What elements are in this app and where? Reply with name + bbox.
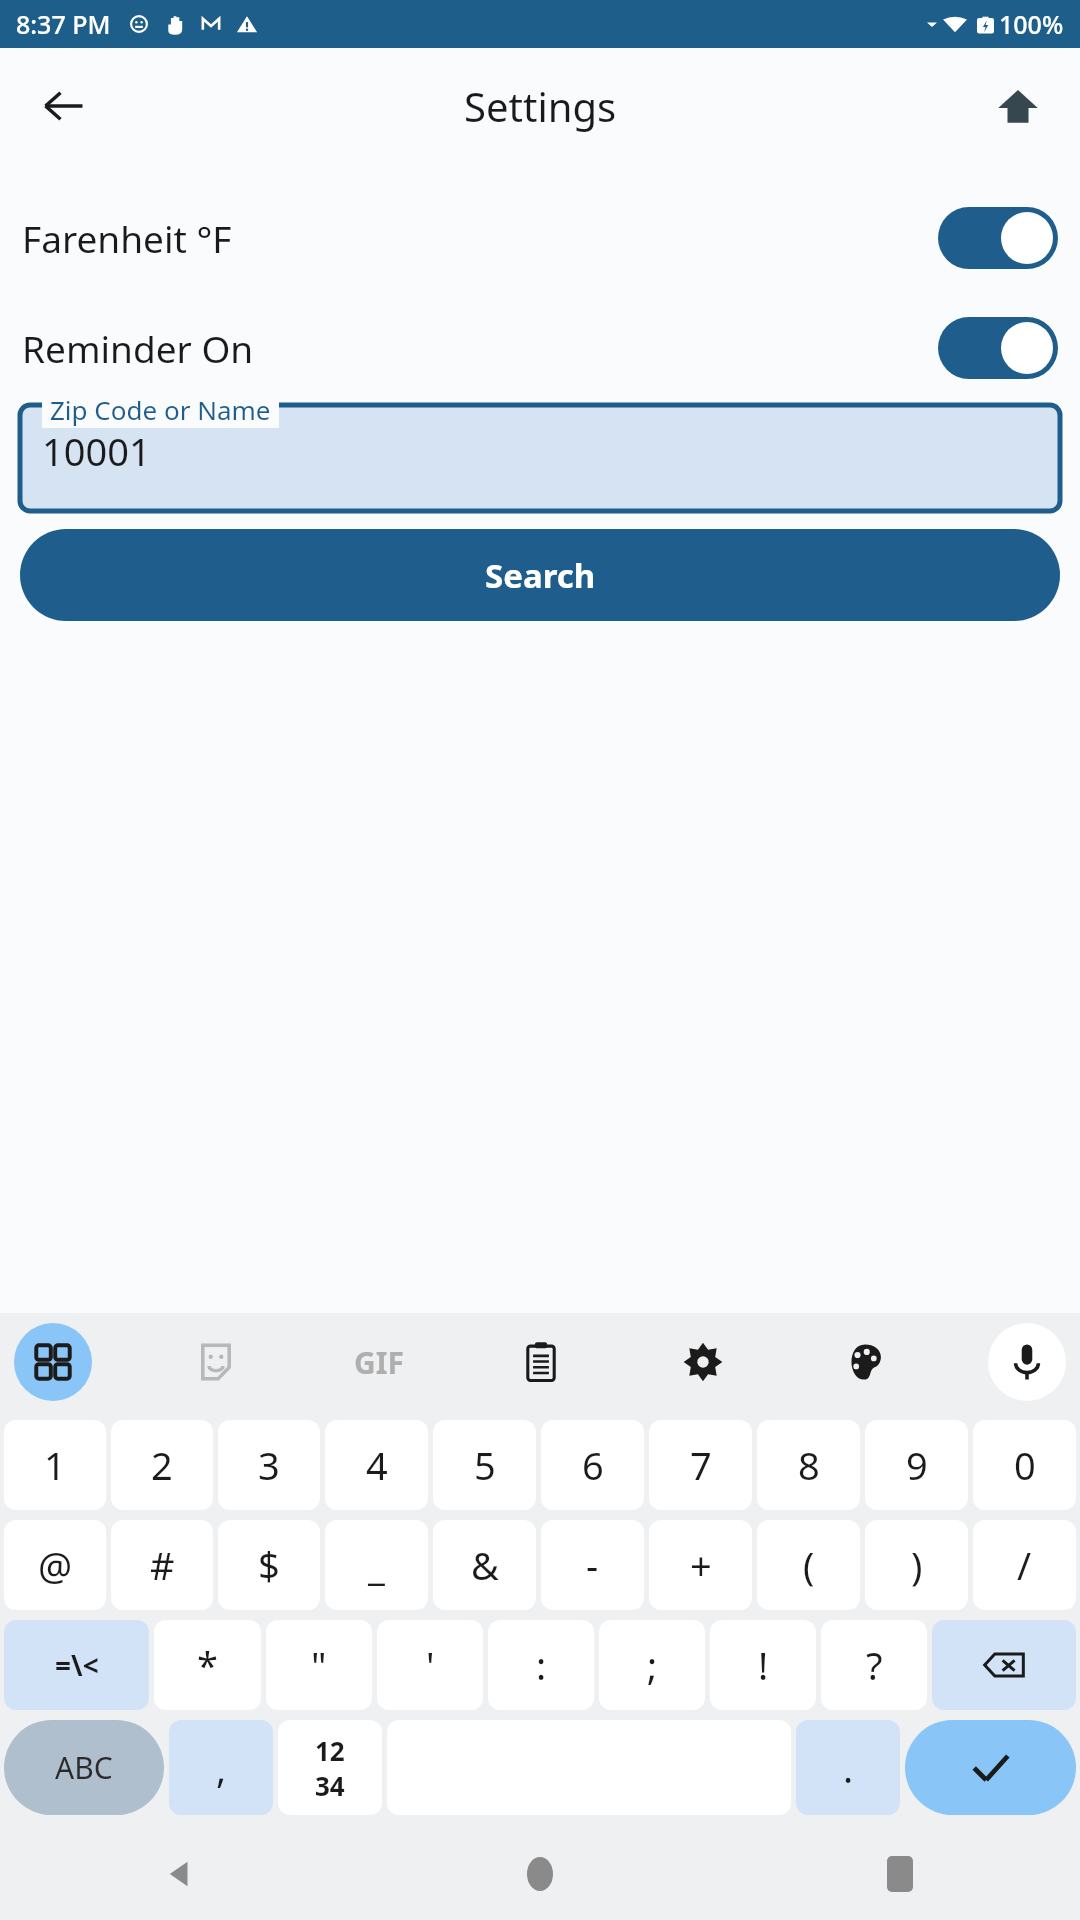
staticText: 34 [315, 1768, 345, 1803]
staticText: - [586, 1539, 599, 1591]
button[interactable]: Apps [14, 1323, 92, 1401]
staticText: & [471, 1539, 499, 1591]
button[interactable]: ABC [4, 1720, 164, 1815]
button[interactable]: Recents [720, 1828, 1080, 1920]
staticText: ABC [55, 1747, 113, 1788]
button[interactable]: Backspace [932, 1620, 1076, 1710]
button[interactable]: & [433, 1520, 536, 1610]
staticText: 100% [999, 7, 1064, 41]
staticText: 6 [582, 1439, 604, 1491]
button[interactable]: 4 [325, 1420, 428, 1510]
button[interactable]: Clipboard [502, 1323, 580, 1401]
button[interactable]: Reminder On [0, 311, 1080, 385]
button[interactable]: Back [0, 1828, 360, 1920]
button[interactable]: Voice input [988, 1323, 1066, 1401]
staticText: / [1017, 1539, 1032, 1591]
button[interactable]: $ [218, 1520, 320, 1610]
button[interactable]: ( [757, 1520, 860, 1610]
staticText: 0 [1014, 1439, 1036, 1491]
button[interactable]: Enter [905, 1720, 1076, 1815]
staticText: 3 [258, 1439, 280, 1491]
button[interactable]: . [796, 1720, 900, 1815]
button[interactable]: " [266, 1620, 372, 1710]
button[interactable]: + [649, 1520, 752, 1610]
staticText: Zip Code or Name [50, 392, 271, 427]
staticText: 4 [366, 1439, 388, 1491]
staticText: + [690, 1539, 712, 1591]
button[interactable]: 5 [433, 1420, 536, 1510]
staticText: " [311, 1639, 327, 1691]
button[interactable]: 9 [865, 1420, 968, 1510]
staticText: ) [911, 1539, 923, 1591]
button[interactable]: 8 [757, 1420, 860, 1510]
staticText: ; [647, 1639, 658, 1691]
button[interactable]: ! [710, 1620, 816, 1710]
button[interactable]: Home [982, 70, 1054, 142]
staticText: Reminder On [22, 323, 254, 373]
button[interactable]: 6 [541, 1420, 644, 1510]
staticText: 7 [690, 1439, 712, 1491]
button[interactable]: GIF [340, 1323, 418, 1401]
button[interactable]: Settings [664, 1323, 742, 1401]
staticText: ! [758, 1639, 769, 1691]
staticText: ( [803, 1539, 815, 1591]
staticText: _ [368, 1539, 385, 1591]
staticText: . [843, 1742, 854, 1794]
staticText: $ [258, 1539, 280, 1591]
button[interactable]: ' [377, 1620, 483, 1710]
staticText: 12 [315, 1733, 345, 1768]
button[interactable]: @ [4, 1520, 106, 1610]
staticText: 1 [44, 1439, 66, 1491]
staticText: @ [38, 1539, 73, 1591]
button[interactable]: Theme [826, 1323, 904, 1401]
button[interactable]: - [541, 1520, 644, 1610]
staticText: 5 [474, 1439, 496, 1491]
staticText: 9 [906, 1439, 928, 1491]
staticText: 10001 [42, 425, 151, 477]
button[interactable]: 1 [4, 1420, 106, 1510]
button[interactable]: Farenheit °F [0, 201, 1080, 275]
button[interactable]: 10001 [20, 405, 1060, 511]
button[interactable]: Search [20, 529, 1060, 621]
staticText: ? [866, 1639, 883, 1691]
button[interactable]: =\< [4, 1620, 149, 1710]
staticText: , [216, 1742, 227, 1794]
button[interactable]: Back [28, 70, 100, 142]
staticText: Settings [464, 79, 617, 133]
staticText: ' [426, 1639, 435, 1691]
staticText: =\< [55, 1646, 99, 1684]
staticText: Search [485, 553, 596, 598]
staticText: 8 [798, 1439, 820, 1491]
staticText: GIF [354, 1342, 404, 1383]
button[interactable]: _ [325, 1520, 428, 1610]
button[interactable]: Numbers [278, 1720, 382, 1815]
button[interactable]: * [154, 1620, 261, 1710]
button[interactable]: ? [821, 1620, 927, 1710]
staticText: 2 [151, 1439, 173, 1491]
button[interactable]: 7 [649, 1420, 752, 1510]
staticText: # [150, 1539, 175, 1591]
button[interactable]: ) [865, 1520, 968, 1610]
staticText: Farenheit °F [22, 213, 232, 263]
staticText: 8:37 PM [16, 7, 111, 41]
button[interactable]: 3 [218, 1420, 320, 1510]
button[interactable]: , [169, 1720, 273, 1815]
button[interactable]: ; [599, 1620, 705, 1710]
staticText: : [536, 1639, 547, 1691]
staticText: * [197, 1639, 218, 1691]
button[interactable]: 0 [973, 1420, 1076, 1510]
button[interactable]: Home [360, 1828, 720, 1920]
button[interactable]: 2 [111, 1420, 213, 1510]
button[interactable]: : [488, 1620, 594, 1710]
button[interactable]: Stickers [177, 1323, 255, 1401]
button[interactable]: # [111, 1520, 213, 1610]
button[interactable]: / [973, 1520, 1076, 1610]
